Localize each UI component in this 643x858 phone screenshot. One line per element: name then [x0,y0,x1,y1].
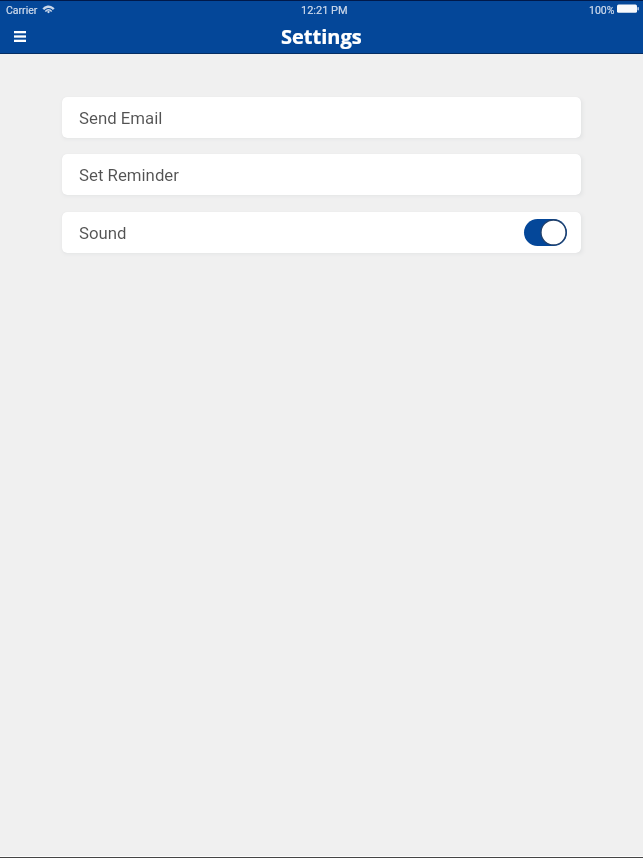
button[interactable]: Open navigation menu [0,20,40,53]
staticText: 12:21 PM [301,4,348,17]
button[interactable]: Sound [62,212,581,253]
staticText: Carrier [6,4,38,16]
button[interactable]: Sound toggle, on [524,219,567,246]
staticText: Set Reminder [79,165,179,185]
staticText: Settings [281,23,362,50]
button[interactable]: Send Email [62,97,581,138]
staticText: Sound [79,223,127,243]
staticText: 100% [589,4,615,16]
staticText: Send Email [79,108,163,128]
button[interactable]: Set Reminder [62,154,581,195]
